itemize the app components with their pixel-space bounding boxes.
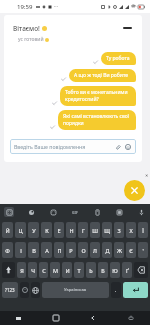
- staticText: М: [53, 267, 58, 274]
- button[interactable]: Recents: [0, 311, 37, 325]
- button[interactable]: Х: [126, 222, 136, 238]
- button[interactable]: Є: [126, 242, 136, 258]
- button[interactable]: GIF: [70, 207, 80, 217]
- staticText: П: [57, 247, 62, 254]
- staticText: Д: [105, 247, 110, 254]
- staticText: Ч: [31, 267, 35, 274]
- button[interactable]: Ч: [28, 262, 37, 278]
- button[interactable]: Г: [78, 222, 88, 238]
- staticText: ✕: [145, 173, 149, 178]
- button[interactable]: Home: [37, 311, 74, 325]
- button[interactable]: Keyboard option: [136, 207, 146, 217]
- button[interactable]: С: [39, 262, 48, 278]
- button[interactable]: Emoji: [20, 282, 29, 298]
- staticText: Т: [77, 267, 81, 274]
- button[interactable]: ?123: [2, 282, 18, 298]
- staticText: Ю: [112, 267, 118, 274]
- button[interactable]: Ь: [86, 262, 96, 278]
- button[interactable]: Change language: [31, 282, 40, 298]
- button[interactable]: Keyboard option: [114, 207, 124, 217]
- staticText: У: [32, 227, 36, 234]
- staticText: Щ: [104, 227, 110, 234]
- button[interactable]: Ту робота: [101, 52, 136, 65]
- button[interactable]: Shift: [2, 262, 15, 278]
- button[interactable]: Які самі встановлюють свої: [58, 110, 136, 130]
- button[interactable]: Keyboard option: [4, 207, 14, 217]
- button[interactable]: А: [41, 242, 52, 258]
- staticText: В: [32, 247, 36, 254]
- button[interactable]: Ї: [138, 222, 148, 238]
- button[interactable]: Ш: [90, 222, 100, 238]
- button[interactable]: Й: [2, 222, 13, 238]
- button[interactable]: И: [62, 262, 72, 278]
- staticText: Я: [20, 267, 24, 274]
- button[interactable]: Ц: [15, 222, 26, 238]
- button[interactable]: М: [50, 262, 60, 278]
- button[interactable]: Українська: [42, 282, 109, 298]
- staticText: Н: [69, 227, 74, 234]
- button[interactable]: Тобто ви є монетальними: [60, 86, 136, 106]
- button[interactable]: Щ: [102, 222, 112, 238]
- button[interactable]: З: [114, 222, 124, 238]
- staticText: Р: [69, 247, 73, 254]
- staticText: Л: [93, 247, 97, 254]
- button[interactable]: О: [78, 242, 88, 258]
- button[interactable]: .: [111, 282, 121, 298]
- staticText: А що ж тоді Ви робите: [74, 72, 128, 79]
- staticText: кредитоспий?: [65, 96, 99, 103]
- staticText: порядки: [63, 120, 84, 127]
- staticText: ···: [54, 3, 59, 10]
- button[interactable]: Ґ: [122, 262, 132, 278]
- button[interactable]: Close chat: [124, 180, 145, 201]
- button[interactable]: А що ж тоді Ви робите: [69, 69, 136, 82]
- button[interactable]: Н: [66, 222, 76, 238]
- button[interactable]: Minimize: [120, 23, 134, 33]
- staticText: А: [45, 247, 49, 254]
- staticText: .: [115, 287, 117, 294]
- button[interactable]: І: [15, 242, 26, 258]
- button[interactable]: Enter: [123, 282, 148, 298]
- button[interactable]: Keyboard option: [48, 207, 58, 217]
- button[interactable]: Б: [98, 262, 108, 278]
- button[interactable]: В: [28, 242, 39, 258]
- button[interactable]: Е: [54, 222, 64, 238]
- staticText: К: [45, 227, 49, 234]
- button[interactable]: Л: [90, 242, 100, 258]
- staticText: З: [117, 227, 121, 234]
- staticText: Тобто ви є монетальними: [65, 89, 128, 96]
- staticText: Ф: [5, 247, 10, 254]
- staticText: Українська: [64, 287, 87, 293]
- staticText: И: [65, 267, 70, 274]
- button[interactable]: Keyboard option: [26, 207, 36, 217]
- button[interactable]: Keyboard settings: [112, 311, 150, 325]
- button[interactable]: Я: [17, 262, 26, 278]
- button[interactable]: К: [41, 222, 52, 238]
- staticText: Г: [82, 227, 85, 234]
- button[interactable]: Д: [102, 242, 112, 258]
- staticText: Х: [129, 227, 133, 234]
- staticText: Введіть Ваше повідомлення: [14, 143, 114, 150]
- button[interactable]: Back: [74, 311, 112, 325]
- button[interactable]: Р: [66, 242, 76, 258]
- staticText: Вітаємо!: [13, 24, 42, 33]
- button[interactable]: Ю: [110, 262, 120, 278]
- button[interactable]: Backspace: [134, 262, 148, 278]
- staticText: ус готовий: [18, 36, 45, 43]
- button[interactable]: У: [28, 222, 39, 238]
- staticText: Є: [129, 247, 133, 254]
- staticText: О: [81, 247, 86, 254]
- staticText: ?123: [5, 287, 15, 293]
- button[interactable]: Ж: [114, 242, 124, 258]
- button[interactable]: Т: [74, 262, 84, 278]
- staticText: Й: [5, 227, 10, 234]
- button[interactable]: Ф: [2, 242, 13, 258]
- button[interactable]: Attach file: [114, 143, 122, 151]
- button[interactable]: ': [138, 242, 148, 258]
- button[interactable]: П: [54, 242, 64, 258]
- button[interactable]: Keyboard option: [92, 207, 102, 217]
- button[interactable]: Введіть Ваше повідомлення: [10, 139, 136, 154]
- staticText: Ц: [18, 227, 23, 234]
- staticText: Ту робота: [106, 55, 130, 62]
- staticText: 19:59: [17, 3, 33, 11]
- button[interactable]: Emoji: [124, 143, 132, 151]
